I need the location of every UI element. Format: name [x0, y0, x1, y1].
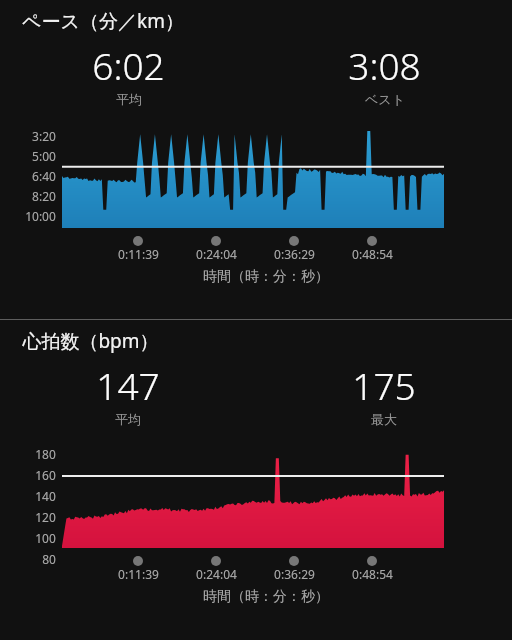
staticText: ペース（分／km） — [22, 8, 184, 34]
staticText: 0:11:39 — [118, 246, 159, 262]
button[interactable]: 175 — [256, 360, 512, 427]
staticText: 0:48:54 — [352, 246, 393, 262]
staticText: 0:36:29 — [274, 566, 315, 582]
staticText: 5:00 — [32, 148, 56, 164]
staticText: ベスト — [365, 91, 405, 107]
staticText: 3:08 — [348, 40, 421, 90]
button[interactable]: Pace chart — [62, 126, 444, 228]
staticText: 180 — [35, 446, 56, 462]
staticText: 3:20 — [32, 128, 56, 144]
staticText: 平均 — [116, 91, 142, 107]
staticText: 心拍数（bpm） — [22, 328, 159, 354]
staticText: 147 — [96, 360, 160, 410]
staticText: 80 — [42, 551, 56, 567]
staticText: 0:24:04 — [196, 566, 237, 582]
staticText: 120 — [35, 509, 56, 525]
button[interactable]: 6:02 — [0, 40, 256, 107]
staticText: 平均 — [115, 411, 141, 427]
staticText: 0:48:54 — [352, 566, 393, 582]
staticText: 100 — [35, 530, 56, 546]
staticText: 時間（時：分：秒） — [203, 268, 329, 286]
staticText: 6:40 — [32, 168, 56, 184]
button[interactable]: 147 — [0, 360, 256, 427]
staticText: 8:20 — [32, 188, 56, 204]
staticText: 0:24:04 — [196, 246, 237, 262]
staticText: 0:11:39 — [118, 566, 159, 582]
staticText: 160 — [35, 467, 56, 483]
staticText: 最大 — [371, 411, 397, 427]
staticText: 140 — [35, 488, 56, 504]
staticText: 10:00 — [25, 208, 56, 224]
staticText: 0:36:29 — [274, 246, 315, 262]
staticText: 時間（時：分：秒） — [203, 588, 329, 606]
staticText: 175 — [352, 360, 416, 410]
staticText: 6:02 — [92, 40, 165, 90]
button[interactable]: Heart rate chart — [62, 446, 444, 548]
button[interactable]: 3:08 — [256, 40, 512, 107]
